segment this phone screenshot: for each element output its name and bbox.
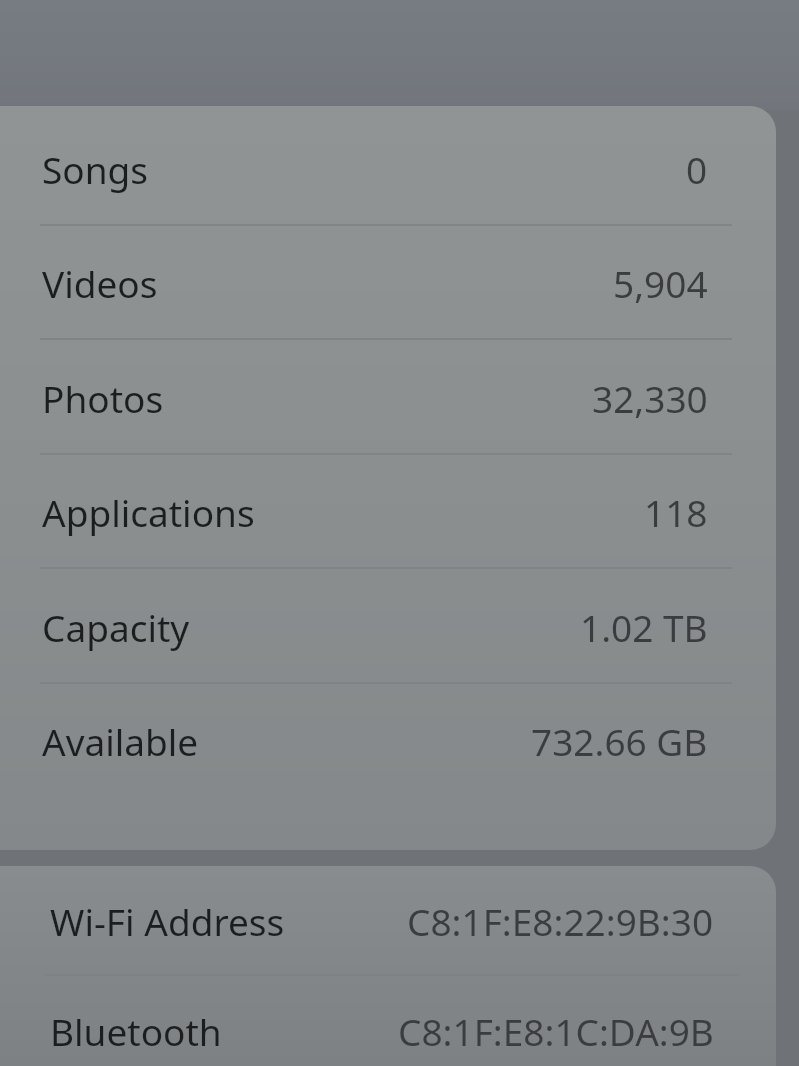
staticText: 5,904 — [613, 258, 708, 308]
button[interactable]: Wi-Fi Address — [0, 866, 776, 976]
button[interactable]: Photos — [0, 341, 776, 455]
staticText: 732.66 GB — [531, 716, 708, 766]
button[interactable]: Capacity — [0, 570, 776, 684]
staticText: 0 — [686, 144, 708, 194]
staticText: C8:1F:E8:22:9B:30 — [407, 896, 714, 946]
staticText: 1.02 TB — [580, 602, 708, 652]
button[interactable]: Applications — [0, 455, 776, 569]
staticText: 32,330 — [592, 373, 708, 423]
staticText: Songs — [42, 144, 149, 194]
staticText: Videos — [42, 258, 158, 308]
button[interactable]: Bluetooth — [0, 976, 776, 1066]
staticText: Wi-Fi Address — [50, 896, 285, 946]
staticText: C8:1F:E8:1C:DA:9B — [398, 1006, 714, 1056]
button[interactable]: Videos — [0, 226, 776, 340]
staticText: 118 — [644, 487, 708, 537]
staticText: Applications — [42, 487, 255, 537]
staticText: Photos — [42, 373, 164, 423]
staticText: Capacity — [42, 602, 190, 652]
staticText: Bluetooth — [50, 1006, 222, 1056]
staticText: Available — [42, 716, 199, 766]
button[interactable]: Songs — [0, 112, 776, 226]
button[interactable]: Available — [0, 684, 776, 798]
